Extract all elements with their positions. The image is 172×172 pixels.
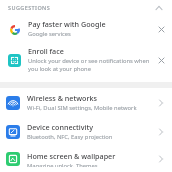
staticText: Bluetooth, NFC, Easy projection bbox=[27, 133, 113, 141]
staticText: SUGGESTIONS bbox=[8, 4, 51, 11]
button[interactable]: Dismiss Enroll face bbox=[154, 53, 168, 67]
button[interactable]: Home screen & wallpaper bbox=[0, 146, 172, 172]
staticText: Enroll face bbox=[28, 46, 64, 56]
staticText: Wi-Fi, Dual SIM settings, Mobile network bbox=[27, 104, 137, 112]
staticText: Google services bbox=[28, 30, 71, 38]
other: Collapse suggestions bbox=[152, 1, 166, 15]
staticText: Wireless & networks bbox=[27, 93, 97, 103]
staticText: Home screen & wallpaper bbox=[27, 151, 116, 161]
staticText: Magazine unlock, Themes bbox=[27, 162, 98, 167]
button[interactable]: Device connectivity bbox=[0, 117, 172, 146]
staticText: Device connectivity bbox=[27, 122, 94, 132]
button[interactable]: Pay faster with Google bbox=[0, 15, 172, 42]
staticText: Unlock your device or see notifications … bbox=[28, 57, 150, 73]
button[interactable]: Enroll face bbox=[0, 42, 172, 77]
button[interactable]: SUGGESTIONS bbox=[0, 0, 172, 15]
button[interactable]: Dismiss Pay faster with Google bbox=[154, 22, 168, 36]
staticText: Pay faster with Google bbox=[28, 19, 106, 29]
button[interactable]: Wireless & networks bbox=[0, 88, 172, 117]
